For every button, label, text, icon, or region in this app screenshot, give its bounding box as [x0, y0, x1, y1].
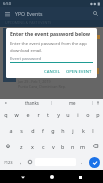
button[interactable]: b [58, 138, 68, 154]
staticText: Enter the event password below [10, 31, 91, 38]
button[interactable]: Home [46, 171, 58, 183]
staticText: YPO Events [15, 10, 43, 17]
staticText: n [71, 143, 75, 150]
staticText: r [37, 111, 40, 118]
staticText: z [20, 143, 23, 150]
button[interactable]: p [93, 107, 103, 122]
staticText: d [31, 127, 35, 134]
staticText: g [51, 127, 55, 134]
button[interactable]: Backspace [88, 138, 103, 154]
button[interactable]: Back [17, 171, 29, 183]
button[interactable]: Open navigation menu [2, 8, 13, 19]
staticText: CANCEL [44, 69, 60, 75]
button[interactable]: w [11, 107, 22, 122]
button[interactable]: o [83, 107, 93, 122]
button[interactable]: t [43, 107, 53, 122]
staticText: i [77, 111, 79, 118]
button[interactable]: Voice input [93, 99, 103, 107]
staticText: Enter the event password from the app do… [10, 41, 87, 53]
button[interactable]: r [33, 107, 43, 122]
button[interactable]: CANCEL [42, 68, 62, 76]
staticText: b [61, 143, 65, 150]
button[interactable]: u [63, 107, 73, 122]
staticText: v [52, 143, 55, 150]
staticText: j [72, 127, 74, 134]
staticText: Jan 29 - Feb 1, 2019 [18, 79, 51, 84]
button[interactable]: Emoji [25, 154, 34, 170]
button[interactable]: l [88, 122, 98, 138]
staticText: x [31, 143, 34, 150]
button[interactable]: Recent apps [74, 171, 86, 183]
button[interactable]: ?123 [0, 154, 16, 170]
button[interactable]: y [53, 107, 63, 122]
staticText: y [57, 111, 60, 118]
button[interactable]: z [16, 138, 27, 154]
button[interactable]: g [48, 122, 58, 138]
button[interactable]: m [78, 138, 88, 154]
button[interactable]: me [52, 99, 92, 107]
button[interactable]: s [16, 122, 27, 138]
staticText: h [61, 127, 65, 134]
staticText: m [80, 143, 86, 150]
staticText: l [92, 127, 94, 134]
button[interactable]: h [58, 122, 68, 138]
staticText: k [82, 127, 85, 134]
button[interactable]: q [0, 107, 11, 122]
staticText: 6:50 [3, 1, 11, 6]
staticText: c [42, 143, 45, 150]
staticText: OPEN EVENT [66, 69, 92, 75]
button[interactable]: e [22, 107, 33, 122]
staticText: ?123 [4, 160, 13, 165]
button[interactable]: , [16, 154, 25, 170]
button[interactable]: a [5, 122, 16, 138]
button[interactable]: thanks [12, 99, 51, 107]
button[interactable]: OPEN EVENT [64, 68, 94, 76]
button[interactable]: n [68, 138, 78, 154]
staticText: Punta Cana, Dominican Rep. [18, 84, 66, 89]
button[interactable]: c [38, 138, 48, 154]
button[interactable]: More suggestions [0, 99, 12, 107]
button[interactable]: f [38, 122, 48, 138]
staticText: s [20, 127, 23, 134]
button[interactable]: d [27, 122, 38, 138]
button[interactable]: Shift [0, 138, 16, 154]
staticText: Event password [10, 56, 41, 62]
staticText: me [69, 100, 76, 106]
button[interactable]: j [68, 122, 78, 138]
staticText: q [4, 111, 8, 118]
staticText: p [96, 111, 100, 118]
button[interactable]: i [73, 107, 83, 122]
staticText: . [81, 159, 83, 166]
staticText: u [66, 111, 70, 118]
button[interactable]: k [78, 122, 88, 138]
button[interactable]: x [27, 138, 38, 154]
staticText: e [26, 111, 30, 118]
staticText: o [86, 111, 90, 118]
staticText: thanks [25, 100, 39, 106]
button[interactable]: v [48, 138, 58, 154]
button[interactable]: . [77, 154, 86, 170]
staticText: a [9, 127, 13, 134]
button[interactable]: Search [90, 8, 101, 19]
button[interactable]: Enter [89, 157, 100, 168]
staticText: w [14, 111, 19, 118]
staticText: UPCOMING & PAST EVENTS [5, 20, 52, 25]
staticText: t [47, 111, 49, 118]
staticText: , [20, 159, 22, 166]
staticText: f [42, 127, 44, 134]
